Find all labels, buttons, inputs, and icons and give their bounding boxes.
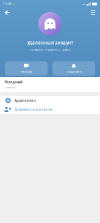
staticText: 4G [82, 2, 85, 6]
staticText: последнее посещение — давно [29, 48, 70, 52]
button[interactable]: Back [1, 8, 13, 17]
staticText: Написать [21, 70, 32, 73]
button[interactable]: More [87, 8, 98, 17]
button[interactable]: Добавить в контакты [0, 105, 100, 114]
staticText: Аудиозаписи [14, 98, 36, 103]
staticText: Уведомить [66, 70, 81, 73]
staticText: Удалённый аккаунт [27, 40, 73, 46]
staticText: Добавить в контакты [14, 107, 52, 112]
button[interactable]: Аудиозаписи [0, 96, 100, 105]
staticText: Мобильный [4, 86, 15, 89]
button[interactable]: Написать [5, 61, 48, 76]
staticText: 13:46 [3, 2, 12, 6]
button[interactable]: Уведомить [52, 61, 95, 76]
staticText: Неведомый [4, 80, 22, 84]
